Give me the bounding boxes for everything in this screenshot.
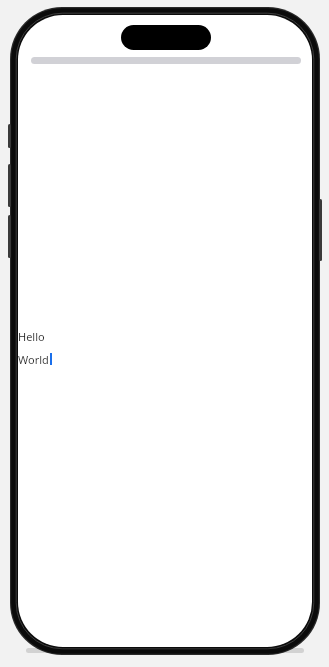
button[interactable]: World xyxy=(18,352,49,367)
button[interactable]: Volume up xyxy=(8,164,11,207)
other: Dynamic Island camera and sensors xyxy=(121,25,211,50)
button[interactable]: Ring silent switch xyxy=(8,124,11,148)
button[interactable]: Hello xyxy=(18,329,45,344)
button[interactable]: Side power button xyxy=(319,199,322,261)
button[interactable]: Volume down xyxy=(8,215,11,258)
